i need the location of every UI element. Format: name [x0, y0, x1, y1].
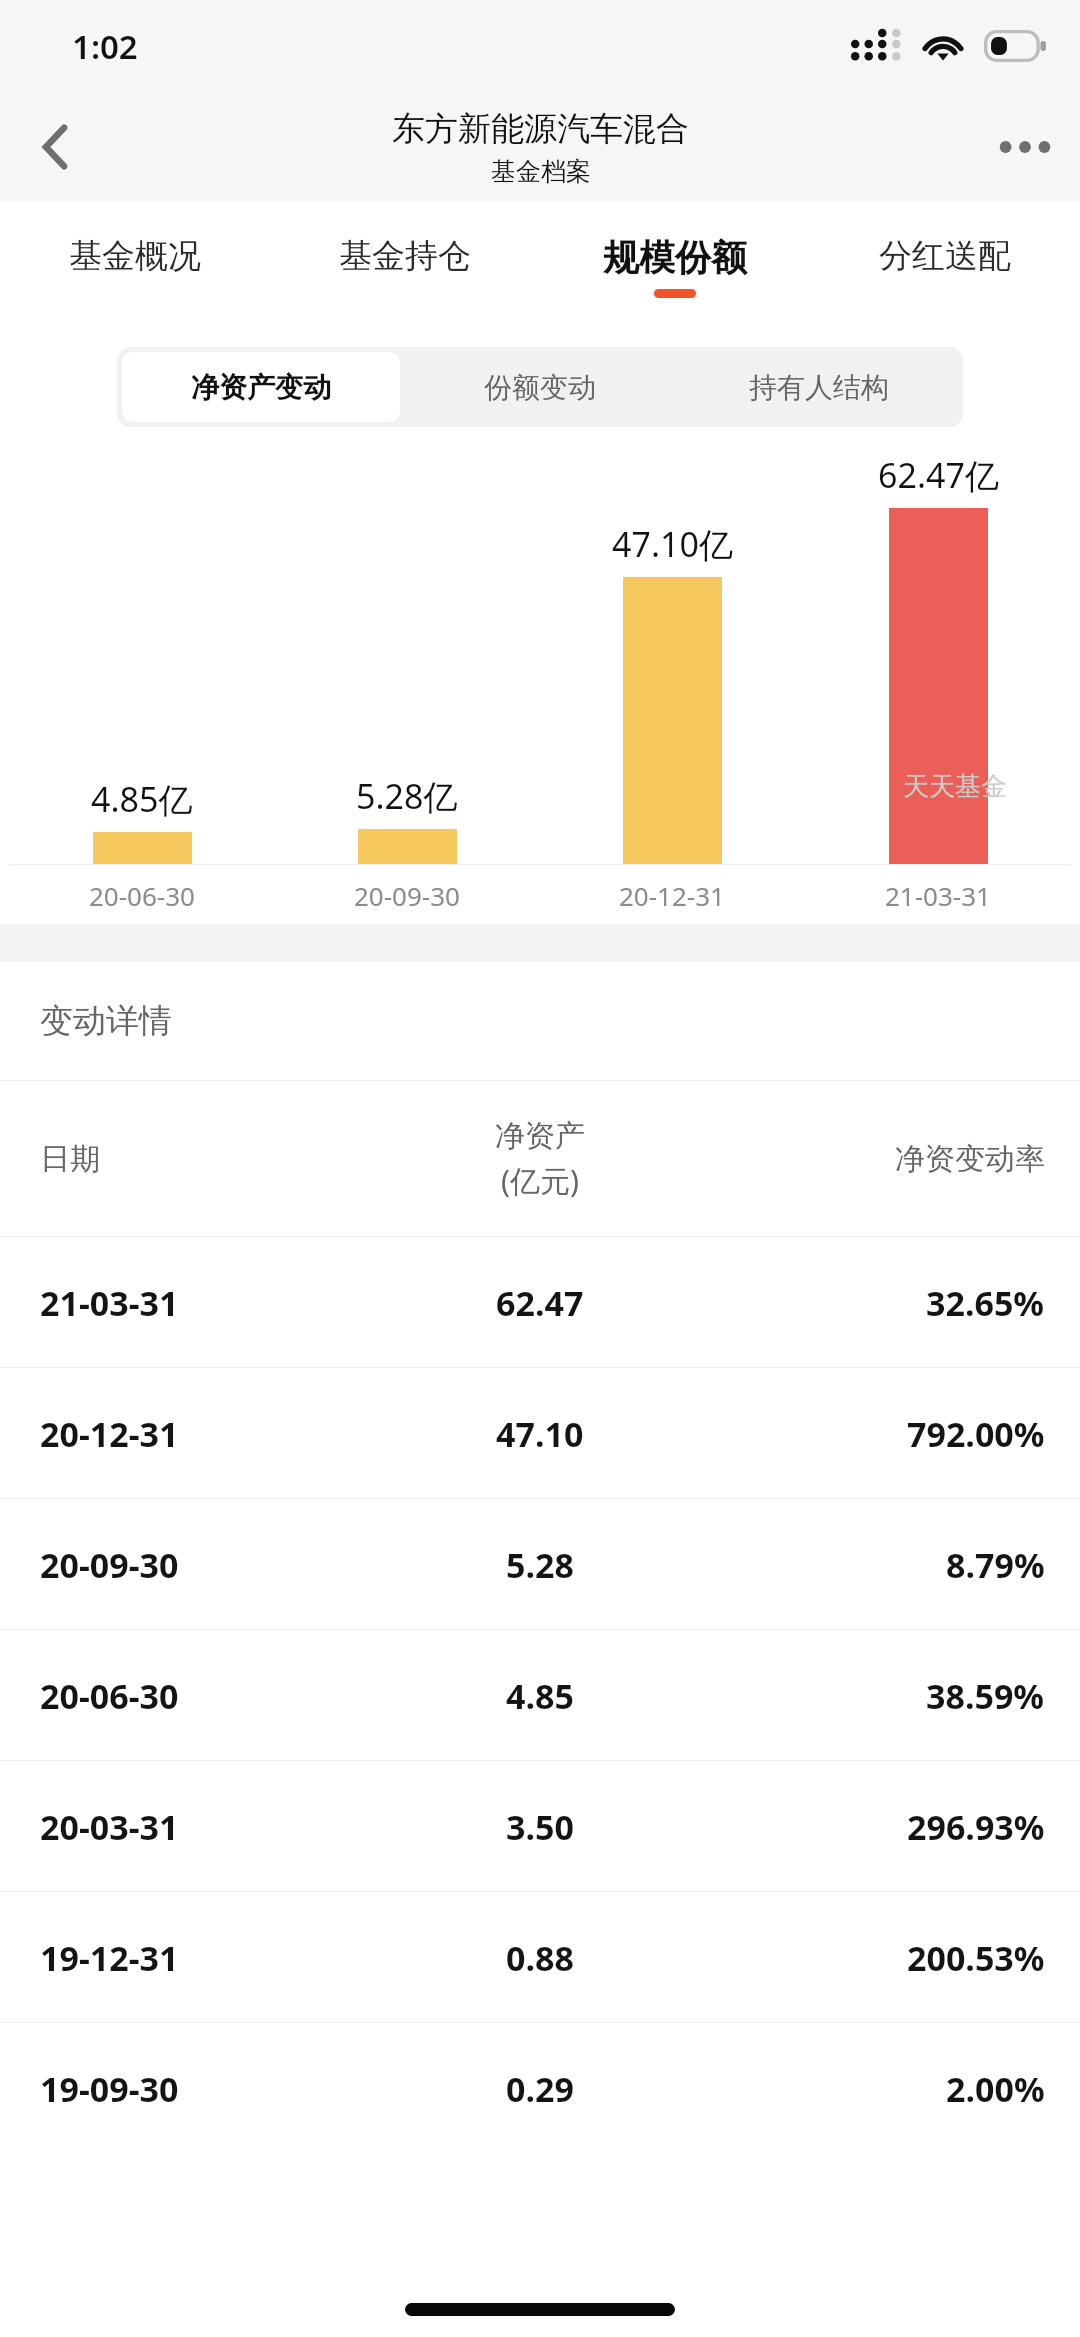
staticText: 日期 [40, 1140, 100, 1178]
staticText: 基金概况 [69, 235, 201, 277]
staticText: 净资产变动 [191, 370, 331, 405]
staticText: 4.85 [506, 1673, 574, 1719]
staticText: 20-06-30 [40, 1673, 179, 1719]
button[interactable]: 分红送配 [810, 202, 1080, 322]
staticText: 21-03-31 [40, 1280, 179, 1326]
staticText: 1:02 [72, 24, 138, 69]
staticText: 19-09-30 [40, 2066, 179, 2112]
staticText: 62.47 [496, 1280, 584, 1326]
button[interactable]: 19-12-31 [0, 1892, 1080, 2023]
staticText: 净资变动率 [895, 1140, 1045, 1178]
button[interactable]: 20-12-31 [0, 1368, 1080, 1499]
button[interactable]: 基金持仓 [270, 202, 540, 322]
staticText: 4.85亿 [91, 776, 193, 822]
staticText: 21-03-31 [885, 878, 991, 913]
staticText: 5.28亿 [356, 773, 458, 819]
staticText: 份额变动 [484, 370, 596, 405]
staticText: 20-09-30 [40, 1542, 179, 1588]
button[interactable]: 19-09-30 [0, 2023, 1080, 2154]
button[interactable]: Back [0, 92, 110, 202]
staticText: 持有人结构 [749, 370, 889, 405]
staticText: 47.10亿 [612, 521, 733, 567]
staticText: 20-09-30 [354, 878, 460, 913]
staticText: 38.59% [926, 1673, 1045, 1719]
staticText: 47.10 [496, 1411, 584, 1457]
staticText: 20-12-31 [619, 878, 725, 913]
staticText: 分红送配 [879, 235, 1011, 277]
staticText: 3.50 [506, 1804, 574, 1850]
staticText: 20-06-30 [89, 878, 195, 913]
staticText: 2.00% [946, 2066, 1045, 2112]
staticText: 天天基金 [903, 770, 1007, 803]
button[interactable]: 份额变动 [400, 352, 679, 422]
staticText: 32.65% [926, 1280, 1045, 1326]
staticText: 规模份额 [603, 235, 747, 280]
staticText: 变动详情 [40, 1000, 172, 1042]
staticText: 296.93% [907, 1804, 1045, 1850]
button[interactable]: 规模份额 [540, 202, 810, 322]
button[interactable]: 20-06-30 [0, 1630, 1080, 1761]
staticText: 8.79% [946, 1542, 1045, 1588]
button[interactable]: More options [970, 92, 1080, 202]
staticText: 792.00% [907, 1411, 1045, 1457]
staticText: 0.88 [506, 1935, 574, 1981]
staticText: 200.53% [907, 1935, 1045, 1981]
staticText: 东方新能源汽车混合 [392, 108, 689, 150]
staticText: 基金档案 [491, 156, 591, 187]
staticText: 20-12-31 [40, 1411, 179, 1457]
button[interactable]: 基金概况 [0, 202, 270, 322]
staticText: 0.29 [506, 2066, 574, 2112]
staticText: 20-03-31 [40, 1804, 179, 1850]
staticText: 62.47亿 [878, 452, 999, 498]
staticText: 19-12-31 [40, 1935, 179, 1981]
staticText: 基金持仓 [339, 235, 471, 277]
button[interactable]: 21-03-31 [0, 1237, 1080, 1368]
staticText: 净资产 (亿元) [495, 1117, 585, 1200]
button[interactable]: 净资产变动 [122, 352, 400, 422]
button[interactable]: 20-09-30 [0, 1499, 1080, 1630]
staticText: 5.28 [506, 1542, 574, 1588]
button[interactable]: 持有人结构 [679, 352, 958, 422]
button[interactable]: 20-03-31 [0, 1761, 1080, 1892]
